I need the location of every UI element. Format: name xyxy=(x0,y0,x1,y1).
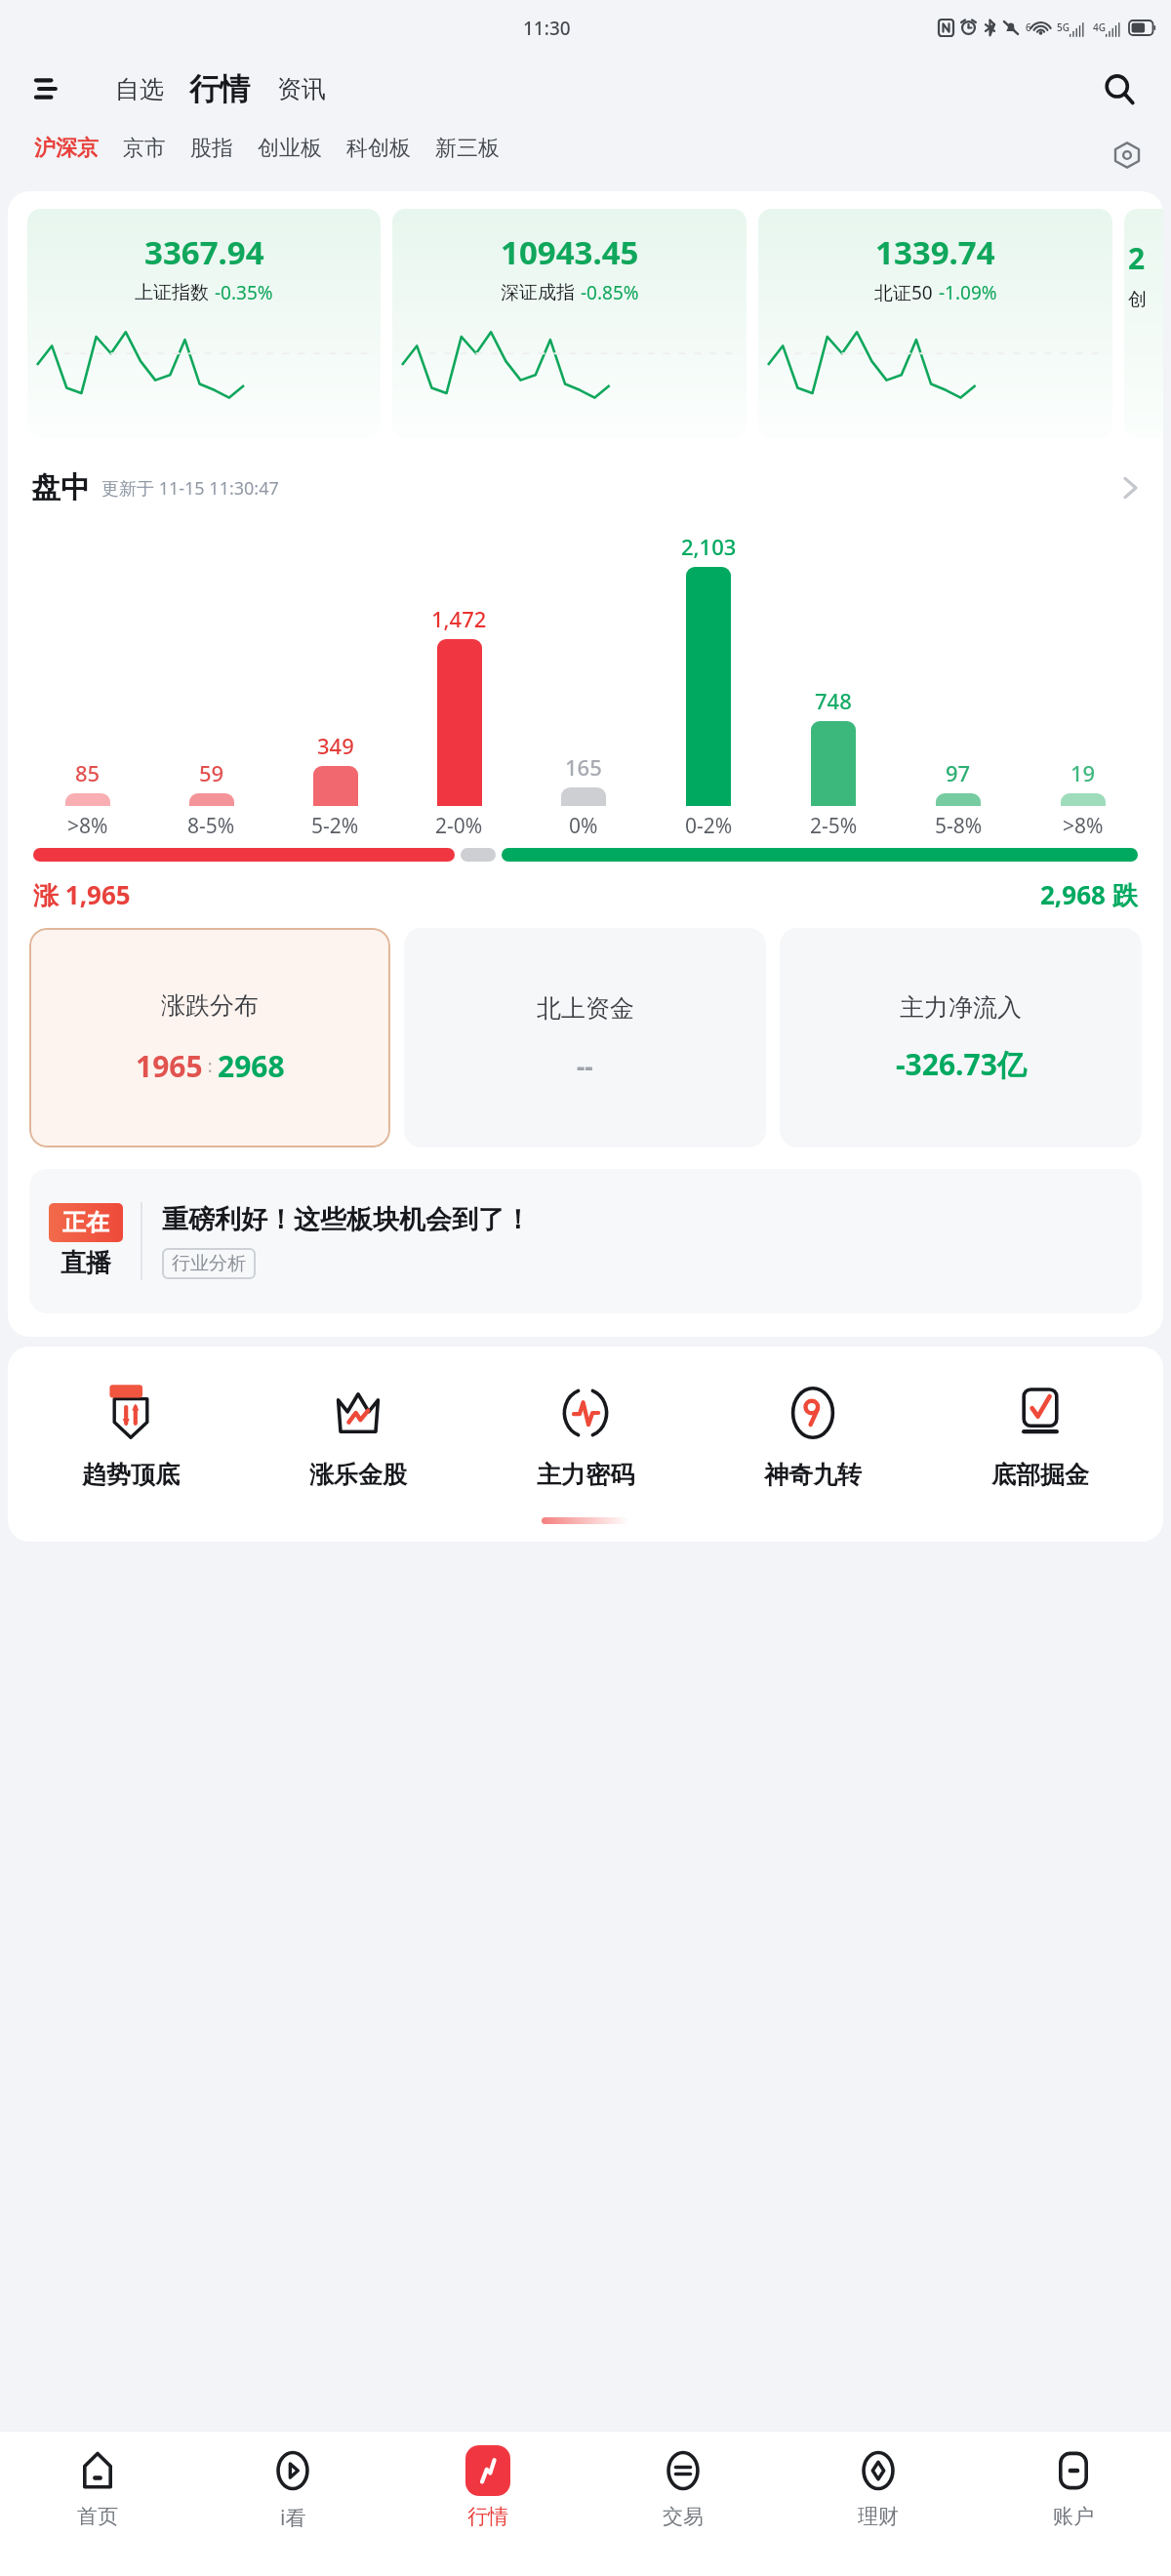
staticText: 4G xyxy=(1093,20,1106,34)
button[interactable]: 股指 xyxy=(182,127,242,170)
staticText: 交易 xyxy=(663,2504,704,2529)
staticText: 6 xyxy=(1026,20,1031,34)
staticText: 97 xyxy=(946,758,971,787)
staticText: 2 xyxy=(1128,238,1146,278)
button[interactable]: 底部掘金 xyxy=(926,1372,1153,1496)
staticText: 神奇九转 xyxy=(764,1460,862,1490)
staticText: 0% xyxy=(569,812,598,840)
staticText: : xyxy=(203,1054,218,1078)
staticText: 748 xyxy=(815,686,852,715)
staticText: 1965 xyxy=(136,1046,203,1086)
staticText: 2-5% xyxy=(810,812,858,840)
staticText: 京市 xyxy=(123,135,166,162)
staticText: 1,472 xyxy=(431,604,487,633)
button[interactable]: 神奇九转 xyxy=(699,1372,926,1496)
button[interactable]: Menu xyxy=(25,66,70,111)
button[interactable]: 京市 xyxy=(114,127,175,170)
staticText: 涨乐金股 xyxy=(309,1460,407,1490)
staticText: 5-2% xyxy=(311,812,359,840)
staticText: 新三板 xyxy=(435,135,500,162)
staticText: i看 xyxy=(280,2504,306,2532)
staticText: 底部掘金 xyxy=(991,1460,1089,1490)
staticText: 1339.74 xyxy=(875,230,995,274)
staticText: 主力净流入 xyxy=(900,992,1022,1023)
button[interactable]: Settings xyxy=(1105,133,1150,178)
button[interactable]: 沪深京 xyxy=(25,127,107,170)
staticText: 创 xyxy=(1128,288,1147,311)
staticText: 理财 xyxy=(858,2504,899,2529)
staticText: 5G xyxy=(1057,20,1070,34)
staticText: 85 xyxy=(75,758,101,787)
staticText: 行情 xyxy=(467,2504,508,2529)
staticText: 5-8% xyxy=(935,812,983,840)
button[interactable]: 主力净流入 xyxy=(780,928,1142,1147)
staticText: 重磅利好！这些板块机会到了！ xyxy=(162,1203,531,1236)
staticText: 2-0% xyxy=(435,812,483,840)
staticText: 行情 xyxy=(189,70,250,108)
button[interactable]: 1339.74 xyxy=(758,209,1112,438)
staticText: 上证指数 xyxy=(135,281,209,304)
button[interactable]: 北上资金 xyxy=(404,928,766,1147)
button[interactable]: 理财 xyxy=(781,2445,976,2576)
button[interactable]: Search xyxy=(1095,64,1144,113)
staticText: 资讯 xyxy=(277,74,326,104)
staticText: 深证成指 xyxy=(501,281,575,304)
button[interactable]: 首页 xyxy=(0,2445,195,2576)
staticText: 首页 xyxy=(77,2504,118,2529)
staticText: 59 xyxy=(199,758,224,787)
staticText: 2,103 xyxy=(681,532,737,561)
button[interactable]: 主力密码 xyxy=(471,1372,699,1496)
staticText: 主力密码 xyxy=(537,1460,634,1490)
staticText: >8% xyxy=(67,812,108,840)
button[interactable]: 交易 xyxy=(585,2445,781,2576)
button[interactable]: 行情 xyxy=(182,68,258,110)
staticText: >8% xyxy=(1063,812,1104,840)
staticText: 19 xyxy=(1070,758,1096,787)
staticText: 2968 xyxy=(218,1046,285,1086)
button[interactable]: 盘中 xyxy=(31,460,1140,516)
button[interactable]: 资讯 xyxy=(267,68,336,110)
staticText: 更新于 11-15 11:30:47 xyxy=(101,476,279,501)
staticText: -0.35% xyxy=(215,280,273,305)
button[interactable]: 账户 xyxy=(976,2445,1171,2576)
button[interactable]: 自选 xyxy=(105,68,174,110)
staticText: 涨跌分布 xyxy=(161,990,259,1021)
staticText: 3367.94 xyxy=(144,230,264,274)
button[interactable]: 行情 xyxy=(390,2445,585,2576)
button[interactable]: 正在 xyxy=(29,1169,1142,1313)
staticText: 11:30 xyxy=(523,16,571,41)
staticText: 349 xyxy=(317,731,354,760)
staticText: 0-2% xyxy=(685,812,733,840)
button[interactable]: 趋势顶底 xyxy=(18,1372,244,1496)
staticText: 趋势顶底 xyxy=(82,1460,180,1490)
staticText: 直播 xyxy=(61,1247,111,1279)
button[interactable]: 10943.45 xyxy=(392,209,747,438)
staticText: 自选 xyxy=(115,74,164,104)
staticText: 正在 xyxy=(62,1208,109,1237)
staticText: 165 xyxy=(565,752,602,782)
button[interactable]: 科创板 xyxy=(338,127,420,170)
button[interactable]: 3367.94 xyxy=(27,209,381,438)
button[interactable]: 新三板 xyxy=(426,127,508,170)
staticText: 沪深京 xyxy=(34,135,99,162)
staticText: 2,968 跌 xyxy=(1040,877,1138,912)
staticText: -0.85% xyxy=(581,280,639,305)
staticText: 创业板 xyxy=(258,135,322,162)
staticText: -1.09% xyxy=(939,280,997,305)
button[interactable]: 创业板 xyxy=(249,127,331,170)
staticText: 股指 xyxy=(190,135,233,162)
staticText: -- xyxy=(577,1049,593,1083)
button[interactable]: i看 xyxy=(195,2445,390,2576)
button[interactable]: 涨乐金股 xyxy=(244,1372,471,1496)
staticText: 科创板 xyxy=(346,135,411,162)
staticText: 10943.45 xyxy=(501,230,639,274)
staticText: 北上资金 xyxy=(537,993,634,1024)
button[interactable]: 涨跌分布 xyxy=(29,928,390,1147)
staticText: 8-5% xyxy=(187,812,235,840)
staticText: 行业分析 xyxy=(172,1252,246,1275)
staticText: 涨 1,965 xyxy=(33,877,131,912)
staticText: 盘中 xyxy=(31,469,90,506)
staticText: 账户 xyxy=(1053,2504,1094,2529)
staticText: 北证50 xyxy=(874,280,933,305)
staticText: -326.73亿 xyxy=(896,1044,1027,1084)
